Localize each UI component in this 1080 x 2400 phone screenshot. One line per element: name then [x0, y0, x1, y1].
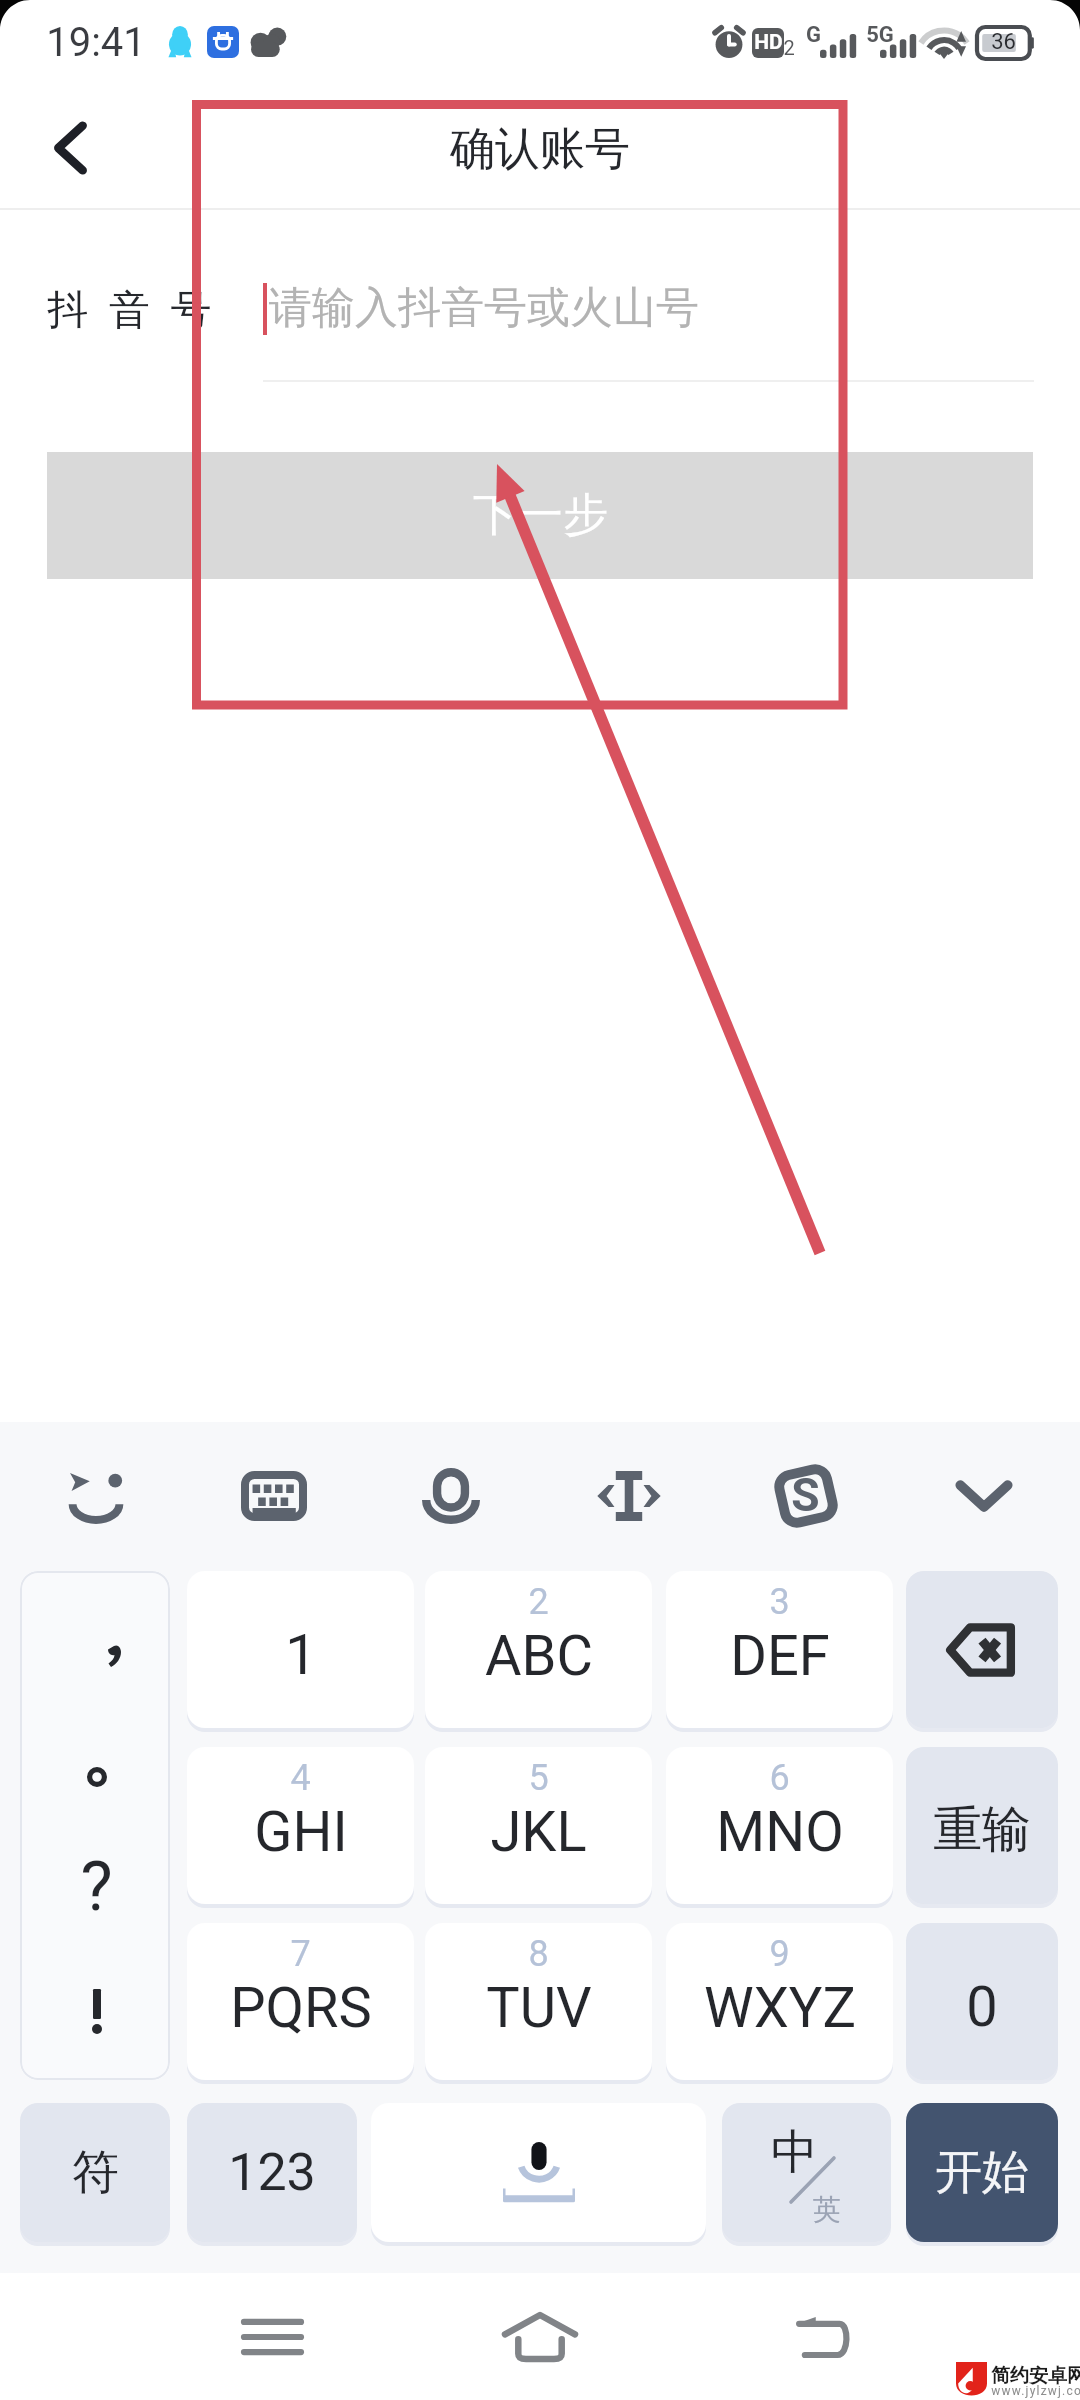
staticText: TUV	[486, 1975, 592, 2041]
button[interactable]: Home	[492, 2289, 588, 2385]
staticText: ?	[80, 1847, 113, 1927]
staticText: GHI	[254, 1799, 348, 1865]
staticText: MNO	[716, 1799, 844, 1865]
staticText: 19:41	[46, 19, 146, 66]
button[interactable]: Voice input	[399, 1436, 503, 1556]
staticText: ABC	[485, 1623, 593, 1689]
button[interactable]: 9	[666, 1923, 893, 2080]
staticText: 0	[966, 1974, 998, 2040]
button[interactable]: Emoji	[44, 1436, 148, 1556]
button[interactable]: 下一步	[47, 452, 1033, 579]
button[interactable]: 1	[187, 1571, 414, 1728]
staticText: 4	[290, 1757, 311, 1799]
staticText: 重输	[933, 1799, 1031, 1861]
button[interactable]: 符	[20, 2103, 170, 2242]
button[interactable]: 7	[187, 1923, 414, 2080]
button[interactable]: Back	[18, 100, 118, 209]
button[interactable]: 2	[425, 1571, 652, 1728]
staticText: 请输入抖音号或火山号	[269, 281, 699, 335]
staticText: 开始	[935, 2143, 1029, 2202]
staticText: JKL	[490, 1799, 587, 1865]
staticText: 9	[769, 1933, 790, 1975]
button[interactable]: 8	[425, 1923, 652, 2080]
button[interactable]: Space	[371, 2103, 706, 2242]
staticText: DEF	[730, 1623, 830, 1689]
staticText: 5G	[866, 22, 894, 48]
staticText: 8	[528, 1933, 549, 1975]
button[interactable]: 开始	[906, 2103, 1058, 2242]
staticText: 123	[228, 2142, 316, 2203]
staticText: 2	[783, 36, 795, 59]
button[interactable]: 123	[187, 2103, 357, 2242]
staticText: 36	[991, 29, 1016, 55]
button[interactable]: 3	[666, 1571, 893, 1728]
staticText: 简约安卓网	[991, 2364, 1080, 2388]
button[interactable]: 4	[187, 1747, 414, 1904]
button[interactable]: ?	[20, 1571, 170, 2080]
button[interactable]: Back	[774, 2289, 870, 2385]
button[interactable]: Hide keyboard	[932, 1436, 1036, 1556]
staticText: 抖 音 号	[47, 285, 217, 337]
staticText: 确认账号	[450, 121, 630, 178]
other: Backspace	[906, 1571, 1058, 1728]
button[interactable]: Sogou menu	[754, 1436, 858, 1556]
button[interactable]: Keyboard layout	[222, 1436, 326, 1556]
button[interactable]: Backspace	[906, 1571, 1058, 1728]
staticText: HD	[754, 30, 783, 55]
staticText: WXYZ	[704, 1975, 856, 2041]
staticText: 英	[813, 2192, 841, 2227]
button[interactable]: Recents	[224, 2289, 320, 2385]
staticText: 1	[285, 1622, 317, 1688]
button[interactable]: 中	[722, 2103, 891, 2242]
other: Space	[371, 2103, 706, 2242]
button[interactable]: 0	[906, 1923, 1058, 2080]
staticText: 下一步	[473, 487, 608, 544]
staticText: S	[791, 1468, 820, 1522]
staticText: G	[806, 22, 821, 48]
staticText: 符	[72, 2143, 119, 2202]
button[interactable]: Move cursor	[577, 1436, 681, 1556]
button[interactable]: 重输	[906, 1747, 1058, 1904]
staticText: 7	[290, 1933, 311, 1975]
button[interactable]: 5	[425, 1747, 652, 1904]
staticText: 6	[769, 1757, 790, 1799]
button[interactable]: 请输入抖音号或火山号	[255, 240, 1080, 380]
staticText: PQRS	[230, 1975, 372, 2041]
button[interactable]: 6	[666, 1747, 893, 1904]
staticText: www.jylzwj.com	[991, 2384, 1080, 2398]
staticText: 5	[528, 1757, 549, 1799]
staticText: 2	[528, 1581, 549, 1623]
staticText: 中	[771, 2123, 818, 2182]
staticText: 3	[769, 1581, 790, 1623]
